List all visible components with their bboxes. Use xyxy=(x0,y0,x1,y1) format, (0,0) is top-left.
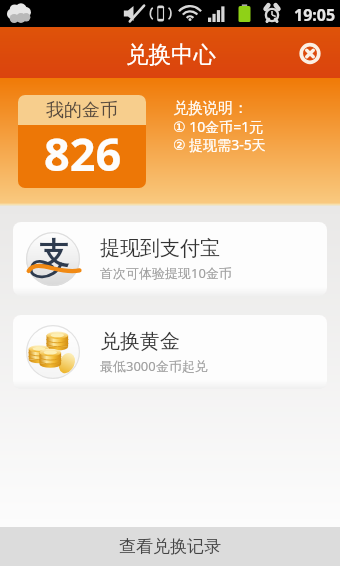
staticText: 兑换黄金 xyxy=(100,329,180,354)
button[interactable]: 查看兑换记录 xyxy=(0,527,340,566)
button[interactable]: 兑换黄金 xyxy=(13,315,327,389)
staticText: 我的金币 xyxy=(46,99,118,122)
staticText: 首次可体验提现10金币 xyxy=(100,264,232,282)
staticText: 支 xyxy=(39,235,69,273)
staticText: ② 提现需3-5天 xyxy=(173,135,266,154)
button[interactable]: 支 xyxy=(13,222,327,296)
staticText: 826 xyxy=(44,123,122,184)
staticText: 提现到支付宝 xyxy=(100,236,220,261)
staticText: 最低3000金币起兑 xyxy=(100,357,208,375)
button[interactable]: Close xyxy=(295,38,325,68)
staticText: 兑换中心 xyxy=(126,40,216,68)
staticText: 19:05 xyxy=(294,4,336,26)
staticText: 查看兑换记录 xyxy=(119,536,221,557)
staticText: 兑换说明： xyxy=(173,99,248,118)
staticText: ① 10金币=1元 xyxy=(173,117,264,136)
